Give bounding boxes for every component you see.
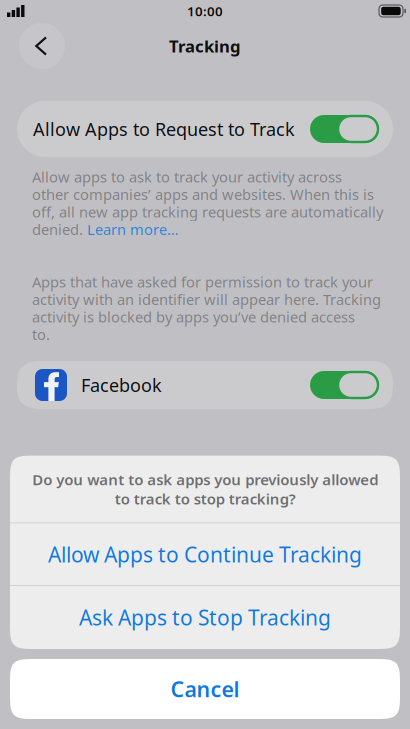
button[interactable]: Allow Apps to Continue Tracking — [10, 523, 400, 585]
staticText: to. — [32, 326, 50, 342]
staticText: Apps that have asked for permission to t… — [32, 274, 373, 290]
staticText: 10:00 — [187, 2, 223, 20]
staticText: activity is blocked by apps you’ve denie… — [32, 309, 355, 325]
staticText: other companies’ apps and websites. When… — [32, 186, 374, 202]
button[interactable]: Cancel — [10, 659, 400, 719]
button[interactable]: Learn more… — [87, 221, 179, 237]
staticText: Tracking — [169, 35, 241, 57]
button[interactable]: Facebook — [17, 361, 393, 409]
staticText: Allow Apps to Continue Tracking — [48, 540, 362, 568]
staticText: denied. — [32, 221, 87, 237]
button[interactable]: Back — [19, 23, 65, 69]
button[interactable]: Ask Apps to Stop Tracking — [10, 586, 400, 649]
staticText: Allow Apps to Request to Track — [33, 117, 295, 141]
staticText: activity with an identifier will appear … — [32, 291, 381, 307]
staticText: Allow apps to ask to track your activity… — [32, 169, 342, 185]
staticText: Do you want to ask apps you previously a… — [32, 470, 378, 508]
staticText: Ask Apps to Stop Tracking — [79, 603, 331, 632]
staticText: Cancel — [170, 674, 239, 704]
staticText: Learn more… — [87, 221, 179, 237]
staticText: Facebook — [81, 373, 162, 397]
staticText: off, all new app tracking requests are a… — [32, 204, 383, 220]
